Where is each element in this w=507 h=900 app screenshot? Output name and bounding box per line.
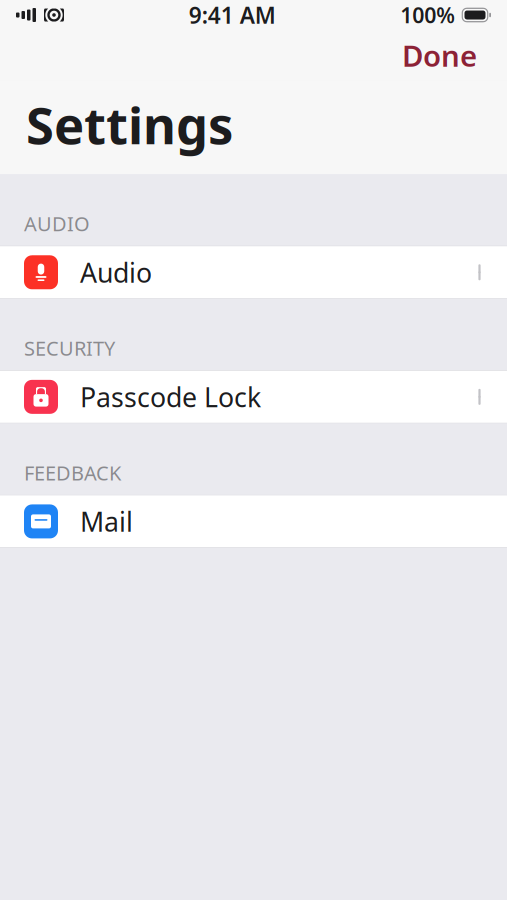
button[interactable]: Mail xyxy=(0,495,507,547)
staticText: 9:41 AM xyxy=(189,0,276,30)
staticText: FEEDBACK xyxy=(24,459,121,486)
button[interactable]: Audio xyxy=(0,246,507,298)
staticText: AUDIO xyxy=(24,210,90,237)
staticText: Settings xyxy=(26,91,233,158)
staticText: Passcode Lock xyxy=(80,379,261,415)
staticText: Audio xyxy=(80,255,152,290)
button[interactable]: Passcode Lock xyxy=(0,371,507,423)
staticText: 100% xyxy=(400,1,455,29)
staticText: SECURITY xyxy=(24,335,115,361)
staticText: Mail xyxy=(80,504,133,539)
button[interactable]: Done xyxy=(392,30,487,81)
staticText: Done xyxy=(402,36,477,75)
